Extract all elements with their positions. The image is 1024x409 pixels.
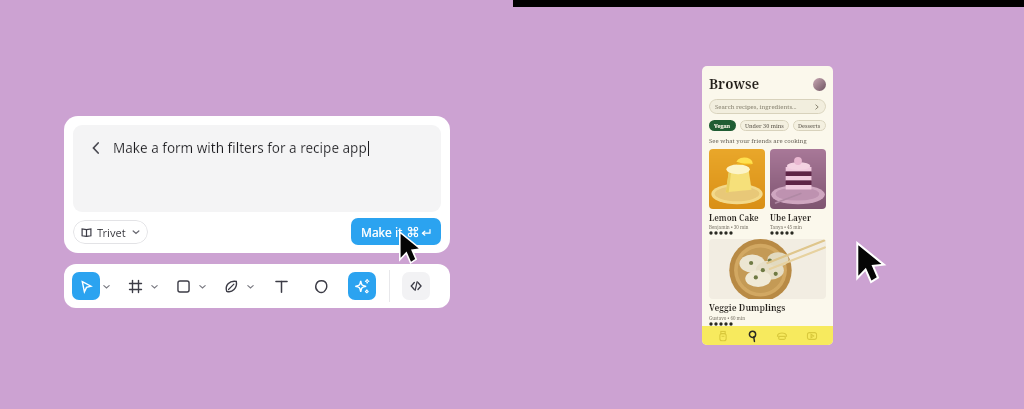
button[interactable]: Profile — [813, 78, 826, 91]
staticText: Vegan — [714, 122, 731, 129]
button[interactable]: AI tool — [348, 272, 376, 300]
button[interactable]: Pantry — [714, 327, 732, 345]
button[interactable]: Search — [744, 327, 762, 345]
button[interactable]: More options — [244, 276, 256, 296]
button[interactable]: Desserts — [798, 120, 821, 131]
button[interactable]: Back — [73, 125, 441, 212]
button[interactable]: Shape tool — [308, 273, 334, 299]
button[interactable]: Text tool — [268, 273, 294, 299]
staticText: Search recipes, ingredients... — [715, 103, 797, 111]
staticText: Browse — [709, 75, 760, 93]
staticText: Trivet — [97, 225, 126, 240]
button[interactable]: Frame tool — [122, 273, 148, 299]
button[interactable]: Back — [87, 139, 105, 157]
button[interactable]: Pen tool — [218, 273, 244, 299]
staticText: Make it — [361, 224, 403, 240]
button[interactable]: More options — [148, 276, 160, 296]
button[interactable]: Rectangle tool — [170, 273, 196, 299]
staticText: Make a form with filters for a recipe ap… — [113, 139, 367, 157]
button[interactable]: Make it — [351, 218, 441, 245]
staticText: Under 30 mins — [745, 122, 784, 129]
staticText: Ube Layer Cake — [770, 212, 826, 223]
staticText: Lemon Cake — [709, 212, 759, 223]
button[interactable]: Vegan — [714, 120, 731, 131]
staticText: Veggie Dumplings — [709, 302, 786, 314]
staticText: Gustavo • 60 min — [709, 315, 746, 321]
button[interactable]: Search recipes, ingredients... — [715, 99, 820, 114]
staticText: See what your friends are cooking — [709, 137, 807, 145]
button[interactable]: More options — [100, 276, 112, 296]
button[interactable]: Code — [402, 272, 430, 300]
staticText: Benjamin • 30 min — [709, 224, 749, 230]
button[interactable]: Lemon Cake — [709, 149, 765, 235]
staticText: Desserts — [798, 122, 821, 129]
button[interactable]: Trivet — [81, 220, 140, 244]
button[interactable]: Cook — [773, 327, 791, 345]
button[interactable]: Under 30 mins — [745, 120, 784, 131]
staticText: Tanya • 45 min — [770, 224, 802, 230]
button[interactable]: Ube Layer Cake — [770, 149, 826, 235]
button[interactable]: Videos — [803, 327, 821, 345]
button[interactable] — [709, 239, 826, 299]
button[interactable]: More options — [196, 276, 208, 296]
button[interactable]: Select tool — [72, 272, 100, 300]
